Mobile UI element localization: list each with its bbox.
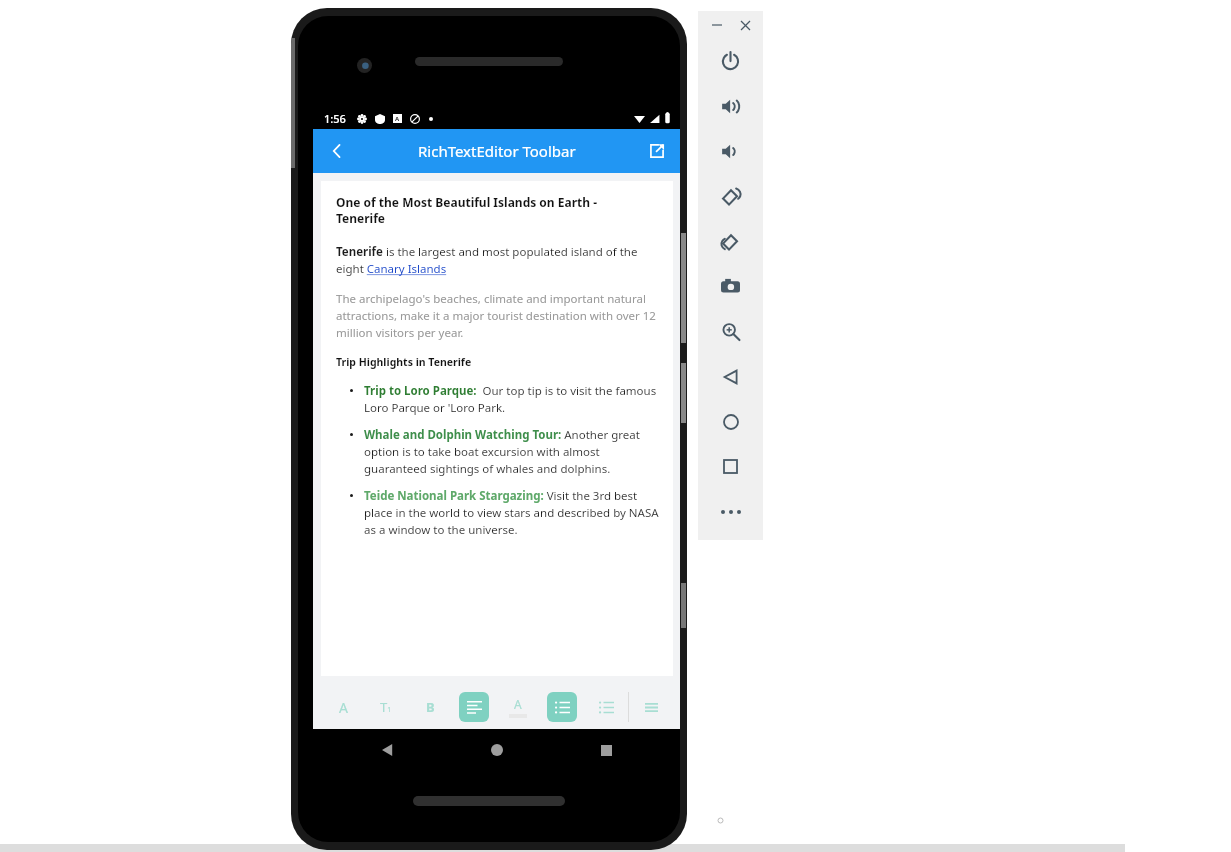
- button[interactable]: Zoom: [698, 309, 763, 354]
- staticText: One of the Most Beautiful Islands on Ear…: [336, 194, 598, 226]
- button[interactable]: Close: [734, 14, 756, 36]
- button[interactable]: Home: [698, 399, 763, 444]
- staticText: Whale and Dolphin Watching Tour: Another…: [364, 427, 663, 476]
- button[interactable]: Minimize: [706, 14, 728, 36]
- button[interactable]: [540, 684, 584, 729]
- button[interactable]: Volume down: [698, 129, 763, 174]
- button[interactable]: T1: [364, 684, 408, 729]
- staticText: Teide National Park Stargazing: Visit th…: [364, 488, 663, 537]
- button[interactable]: [452, 684, 496, 729]
- button[interactable]: Back: [319, 133, 355, 169]
- button[interactable]: Rotate left: [698, 174, 763, 219]
- staticText: RichTextEditor Toolbar: [418, 141, 576, 161]
- button[interactable]: Volume up: [698, 84, 763, 129]
- staticText: A: [395, 115, 400, 123]
- button[interactable]: More: [698, 489, 763, 534]
- button[interactable]: A: [496, 684, 540, 729]
- staticText: Trip to Loro Parque: Our top tip is to v…: [364, 383, 663, 415]
- staticText: 1:56: [324, 111, 346, 126]
- button[interactable]: Back: [698, 354, 763, 399]
- staticText: A: [514, 696, 522, 712]
- button[interactable]: Recent apps: [591, 735, 621, 765]
- button[interactable]: Open external link: [639, 133, 675, 169]
- button[interactable]: Power: [698, 39, 763, 84]
- button[interactable]: Screenshot: [698, 264, 763, 309]
- staticText: T1: [380, 698, 392, 716]
- button[interactable]: Overview: [698, 444, 763, 489]
- button[interactable]: B: [408, 684, 452, 729]
- staticText: The archipelago's beaches, climate and i…: [336, 291, 663, 341]
- button[interactable]: [629, 684, 673, 729]
- button[interactable]: [584, 684, 628, 729]
- staticText: Trip Highlights in Tenerife: [336, 355, 472, 369]
- staticText: B: [426, 698, 435, 716]
- button[interactable]: Home: [482, 735, 512, 765]
- button[interactable]: A: [321, 684, 364, 729]
- staticText: Tenerife is the largest and most populat…: [336, 244, 663, 277]
- button[interactable]: Back: [373, 735, 403, 765]
- staticText: A: [339, 698, 348, 717]
- button[interactable]: Rotate right: [698, 219, 763, 264]
